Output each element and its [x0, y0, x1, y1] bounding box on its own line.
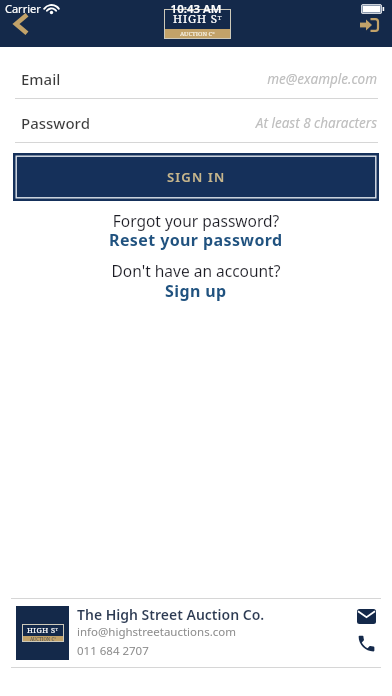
staticText: At least 8 characters [0, 114, 377, 132]
staticText: AUCTION C° [180, 30, 215, 38]
staticText: Carrier [5, 1, 41, 16]
staticText: me@example.com [0, 70, 377, 88]
staticText: HIGH ST [173, 11, 223, 27]
button[interactable]: SIGN IN [13, 153, 379, 201]
staticText: The High Street Auction Co. [77, 605, 265, 624]
button[interactable] [352, 630, 381, 657]
staticText: AUCTION C° [30, 636, 56, 642]
button[interactable]: Reset your password [106, 229, 286, 251]
staticText: Email [21, 69, 61, 89]
staticText: Forgot your password? [0, 210, 392, 231]
button[interactable] [4, 9, 36, 39]
staticText: Don't have an account? [0, 260, 392, 281]
button[interactable] [352, 604, 381, 629]
button[interactable] [352, 12, 386, 38]
staticText: Reset your password [109, 229, 283, 251]
staticText: 10:43 AM [0, 1, 392, 17]
staticText: SIGN IN [167, 168, 226, 186]
staticText: Sign up [165, 280, 227, 302]
button[interactable]: Sign up [156, 280, 236, 302]
staticText: Password [21, 113, 90, 133]
staticText: 011 684 2707 [77, 643, 149, 659]
staticText: info@highstreetauctions.com [77, 624, 236, 640]
staticText: HIGH ST [27, 625, 59, 635]
